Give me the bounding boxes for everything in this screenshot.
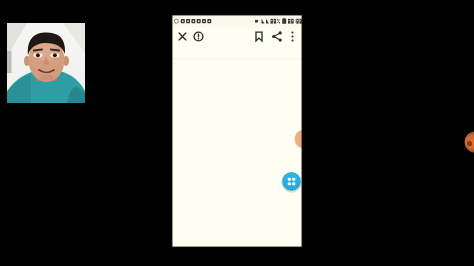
- button[interactable]: Bookmark: [251, 29, 267, 44]
- button[interactable]: Close: [175, 29, 191, 44]
- button[interactable]: Share: [269, 29, 285, 44]
- button[interactable]: More options: [288, 29, 300, 44]
- button[interactable]: Apps: [282, 172, 301, 191]
- button[interactable]: Information: [191, 29, 207, 44]
